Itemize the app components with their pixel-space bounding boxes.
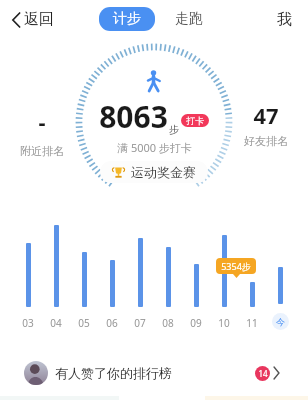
button[interactable]: 07 xyxy=(126,221,154,330)
other: 查看详情 xyxy=(273,367,280,379)
staticText: 8063 xyxy=(99,96,168,137)
button[interactable]: 03 xyxy=(14,221,42,330)
staticText: 06 xyxy=(106,316,118,330)
button[interactable]: 走跑 xyxy=(169,7,209,31)
button[interactable]: 今 xyxy=(266,218,294,330)
button[interactable]: 返回 xyxy=(8,6,58,33)
staticText: 好友排名 xyxy=(244,134,288,148)
staticText: 步 xyxy=(169,123,179,136)
staticText: 我 xyxy=(277,10,292,29)
staticText: 打卡 xyxy=(186,115,204,126)
button[interactable]: 10 xyxy=(210,221,238,330)
button[interactable]: 06 xyxy=(98,221,126,330)
button[interactable]: 计步 xyxy=(99,7,155,31)
button[interactable]: 04 xyxy=(42,221,70,330)
staticText: 今 xyxy=(276,316,285,327)
staticText: 11 xyxy=(246,316,258,330)
staticText: 47 xyxy=(253,100,279,130)
staticText: 03 xyxy=(22,316,34,330)
staticText: 04 xyxy=(50,316,62,330)
staticText: 09 xyxy=(190,316,202,330)
staticText: - xyxy=(38,106,46,136)
staticText: 10 xyxy=(218,316,230,330)
staticText: 计步 xyxy=(113,10,141,28)
button[interactable]: 打卡 xyxy=(181,114,209,127)
button[interactable]: 05 xyxy=(70,221,98,330)
staticText: 运动奖金赛 xyxy=(131,164,196,180)
staticText: 08 xyxy=(162,316,174,330)
button[interactable]: 我 xyxy=(271,6,298,33)
button[interactable]: 08 xyxy=(154,221,182,330)
staticText: 走跑 xyxy=(175,10,203,28)
button[interactable]: - xyxy=(14,104,70,160)
staticText: 5354步 xyxy=(221,260,251,272)
staticText: 14 xyxy=(258,368,268,379)
button[interactable]: 有人赞了你的排行榜 xyxy=(18,356,290,390)
staticText: 05 xyxy=(78,316,90,330)
staticText: 返回 xyxy=(24,10,54,29)
button[interactable]: 运动奖金赛 xyxy=(100,161,208,183)
button[interactable]: 11 xyxy=(238,221,266,330)
button[interactable]: 47 xyxy=(238,98,294,150)
staticText: 有人赞了你的排行榜 xyxy=(55,365,172,381)
staticText: 满 5000 步打卡 xyxy=(117,140,192,155)
staticText: 附近排名 xyxy=(20,144,64,158)
button[interactable]: 09 xyxy=(182,221,210,330)
staticText: 07 xyxy=(134,316,146,330)
